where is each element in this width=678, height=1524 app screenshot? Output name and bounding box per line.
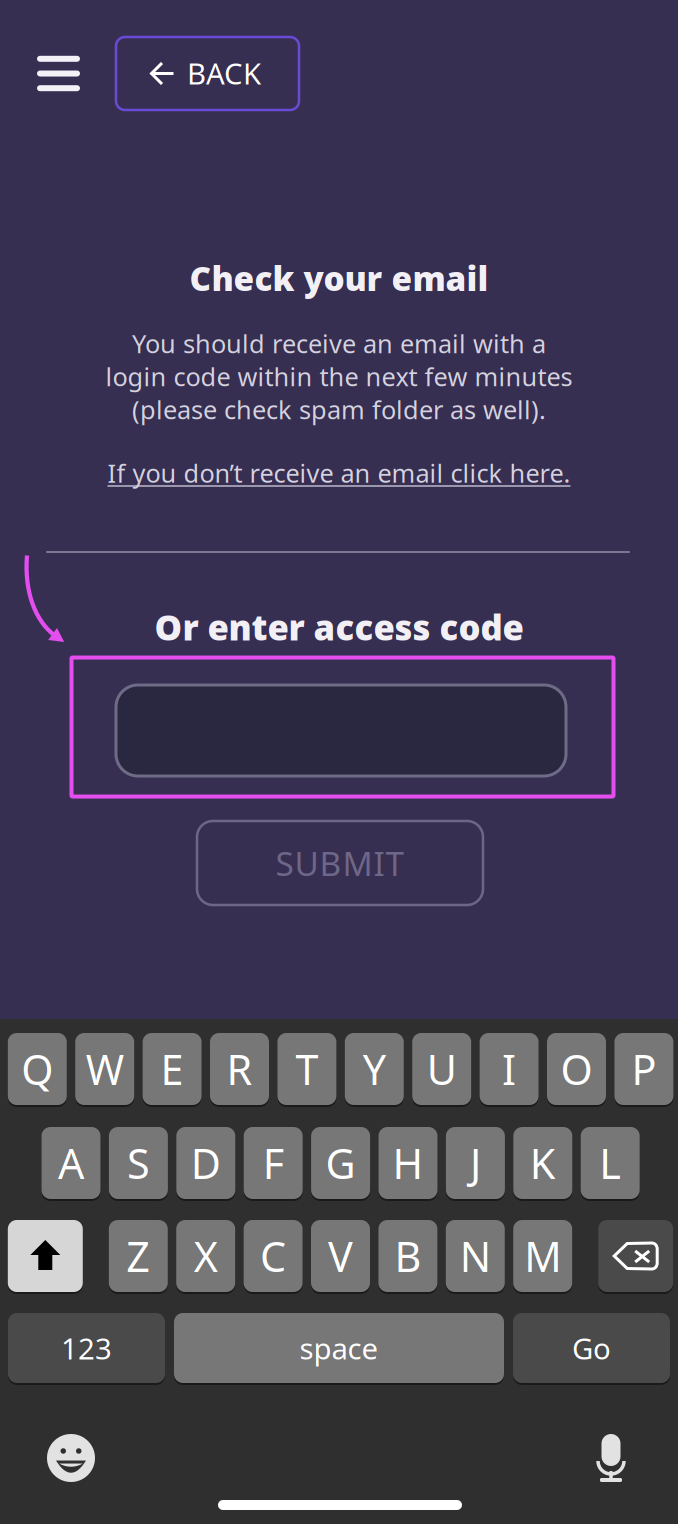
staticText: H <box>392 1136 423 1190</box>
staticText: S <box>127 1136 150 1190</box>
staticText: Go <box>572 1328 611 1367</box>
button[interactable]: K <box>513 1126 572 1200</box>
staticText: A <box>58 1136 84 1190</box>
button[interactable]: D <box>176 1126 235 1200</box>
staticText: J <box>470 1136 481 1190</box>
staticText: space <box>299 1328 378 1367</box>
button[interactable]: Menu <box>27 37 90 110</box>
staticText: Or enter access code <box>154 604 523 650</box>
button[interactable]: V <box>311 1219 370 1293</box>
staticText: N <box>460 1229 491 1283</box>
button[interactable]: R <box>210 1032 269 1106</box>
staticText: O <box>560 1042 592 1096</box>
button[interactable]: Access code <box>116 685 566 776</box>
button[interactable]: If you don’t receive an email click here… <box>0 452 678 494</box>
button[interactable]: E <box>143 1032 202 1106</box>
button[interactable]: Q <box>8 1032 67 1106</box>
button[interactable]: X <box>176 1219 235 1293</box>
staticText: B <box>394 1229 421 1283</box>
staticText: G <box>326 1136 356 1190</box>
staticText: C <box>260 1229 286 1283</box>
button[interactable]: F <box>244 1126 303 1200</box>
staticText: W <box>86 1042 124 1096</box>
staticText: 123 <box>61 1328 112 1367</box>
staticText: Y <box>363 1042 386 1096</box>
button[interactable]: L <box>581 1126 640 1200</box>
button[interactable]: A <box>41 1126 100 1200</box>
staticText: login code within the next few minutes <box>105 360 572 393</box>
button[interactable]: Emoji <box>47 1434 95 1482</box>
staticText: SUBMIT <box>275 841 404 885</box>
button[interactable]: B <box>378 1219 437 1293</box>
staticText: Z <box>126 1229 150 1283</box>
staticText: V <box>328 1229 353 1283</box>
staticText: P <box>631 1042 656 1096</box>
staticText: M <box>524 1229 561 1283</box>
staticText: You should receive an email with a <box>132 327 546 360</box>
button[interactable]: I <box>480 1032 539 1106</box>
button[interactable]: W <box>75 1032 134 1106</box>
button[interactable]: J <box>446 1126 505 1200</box>
staticText: If you don’t receive an email click here… <box>107 456 570 490</box>
staticText: (please check spam folder as well). <box>132 393 546 426</box>
button[interactable]: Z <box>109 1219 168 1293</box>
button[interactable]: 123 <box>8 1312 165 1384</box>
button[interactable]: S <box>109 1126 168 1200</box>
button[interactable]: Y <box>345 1032 404 1106</box>
button[interactable]: Go <box>513 1312 670 1384</box>
staticText: X <box>194 1229 218 1283</box>
button[interactable]: G <box>311 1126 370 1200</box>
staticText: K <box>530 1136 556 1190</box>
staticText: I <box>502 1042 516 1096</box>
button[interactable]: Delete <box>598 1219 673 1293</box>
button[interactable]: BACK <box>116 37 299 110</box>
button[interactable]: C <box>244 1219 303 1293</box>
button[interactable]: M <box>513 1219 572 1293</box>
staticText: R <box>226 1042 252 1096</box>
staticText: D <box>191 1136 221 1190</box>
button[interactable]: O <box>547 1032 606 1106</box>
button[interactable]: P <box>614 1032 673 1106</box>
button[interactable]: U <box>412 1032 471 1106</box>
staticText: Check your email <box>189 256 488 300</box>
staticText: E <box>161 1042 184 1096</box>
staticText: Q <box>21 1042 53 1096</box>
staticText: T <box>295 1042 318 1096</box>
button[interactable]: space <box>174 1312 504 1384</box>
button[interactable]: T <box>277 1032 336 1106</box>
staticText: BACK <box>187 53 261 92</box>
button[interactable]: SUBMIT <box>197 821 483 905</box>
button[interactable]: Dictation <box>596 1434 626 1482</box>
staticText: U <box>427 1042 457 1096</box>
button[interactable]: Shift <box>8 1219 83 1293</box>
button[interactable]: N <box>446 1219 505 1293</box>
button[interactable]: H <box>378 1126 437 1200</box>
staticText: L <box>599 1136 621 1190</box>
staticText: F <box>263 1136 284 1190</box>
